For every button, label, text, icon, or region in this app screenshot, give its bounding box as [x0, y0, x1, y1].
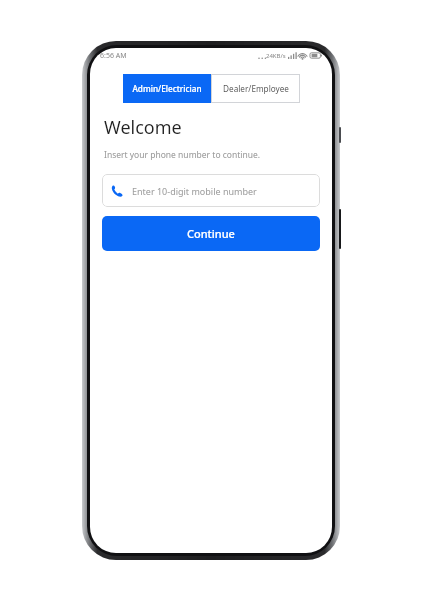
staticText: Insert your phone number to continue. — [104, 149, 261, 161]
staticText: Continue — [187, 226, 235, 241]
button[interactable]: Continue — [102, 216, 320, 251]
staticText: 24KB/s — [266, 52, 286, 60]
staticText: Dealer/Employee — [223, 83, 289, 94]
staticText: Welcome — [104, 115, 182, 140]
button[interactable]: Phone — [102, 174, 320, 207]
staticText: Admin/Electrician — [132, 83, 202, 94]
button[interactable]: Dealer/Employee — [211, 74, 300, 103]
staticText: 6:56 AM — [100, 51, 127, 61]
button[interactable]: Admin/Electrician — [123, 74, 211, 103]
other: Phone — [111, 185, 123, 197]
staticText: Enter 10-digit mobile number — [132, 185, 257, 197]
